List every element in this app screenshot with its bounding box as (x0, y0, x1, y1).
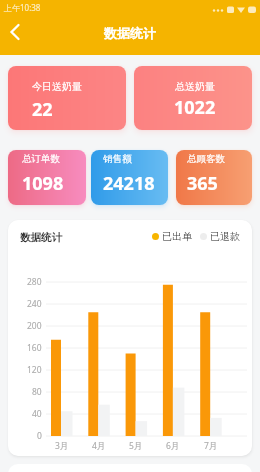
staticText: 160 (27, 342, 42, 354)
staticText: 数据统计 (20, 231, 62, 244)
staticText: 240 (27, 298, 42, 310)
staticText: 今日送奶量 (32, 80, 82, 93)
staticText: 已退款 (210, 230, 240, 243)
staticText: 365 (187, 171, 218, 196)
staticText: 24218 (103, 171, 155, 196)
staticText: 数据统计 (0, 25, 260, 41)
staticText: 销售额 (103, 153, 132, 165)
staticText: 1098 (22, 171, 64, 196)
staticText: 4月 (92, 440, 106, 452)
staticText: 200 (27, 320, 42, 332)
staticText: 总送奶量 (175, 80, 215, 93)
staticText: 已出单 (162, 230, 192, 243)
staticText: 0 (37, 430, 42, 442)
staticText: 40 (32, 408, 42, 420)
staticText: 总顾客数 (187, 153, 225, 165)
staticText: 22 (32, 97, 53, 122)
staticText: 280 (27, 276, 42, 288)
staticText: 7月 (204, 440, 218, 452)
staticText: 120 (27, 364, 42, 376)
staticText: 总订单数 (22, 153, 60, 165)
staticText: 80 (32, 386, 42, 398)
staticText: 1022 (174, 95, 216, 120)
staticText: 5月 (129, 440, 143, 452)
staticText: 3月 (55, 440, 69, 452)
staticText: 6月 (166, 440, 180, 452)
staticText: 上午10:38 (4, 2, 41, 13)
